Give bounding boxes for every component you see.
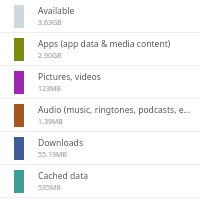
button[interactable]: Downloads — [0, 132, 200, 165]
staticText: Audio (music, ringtones, podcasts, etc.) — [38, 104, 192, 116]
button[interactable]: Available — [0, 0, 200, 33]
staticText: 2.90GB — [38, 51, 62, 61]
staticText: 3.63GB — [38, 18, 62, 28]
staticText: Pictures, videos — [38, 71, 101, 83]
staticText: 1.39MB — [38, 117, 63, 127]
button[interactable]: Pictures, videos — [0, 66, 200, 99]
staticText: Available — [38, 5, 75, 17]
staticText: 535MB — [38, 183, 61, 193]
staticText: Downloads — [38, 137, 84, 149]
button[interactable]: Apps (app data & media content) — [0, 33, 200, 66]
staticText: Cached data — [38, 170, 89, 182]
button[interactable]: Audio (music, ringtones, podcasts, etc.) — [0, 99, 200, 132]
staticText: 123MB — [38, 84, 61, 94]
staticText: 55.19MB — [38, 150, 67, 160]
staticText: Apps (app data & media content) — [38, 38, 171, 50]
button[interactable]: Cached data — [0, 165, 200, 198]
